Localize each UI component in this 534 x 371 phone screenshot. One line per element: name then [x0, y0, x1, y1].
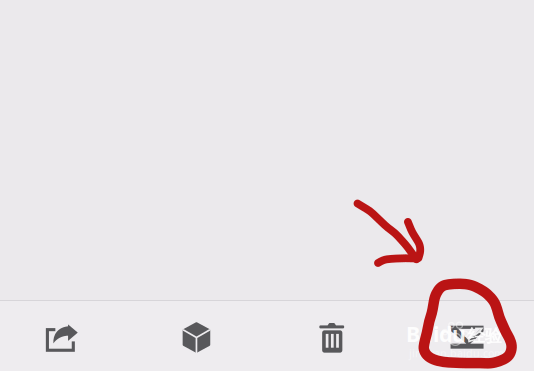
staticText: Baidu [406, 320, 466, 348]
button[interactable]: Share [0, 301, 133, 371]
button[interactable]: Save to camera roll [400, 301, 534, 371]
button[interactable]: Package [133, 301, 267, 371]
staticText: 经验 [468, 325, 502, 347]
staticText: jingyan.baidu.com [409, 346, 504, 360]
button[interactable]: Delete [267, 301, 400, 371]
